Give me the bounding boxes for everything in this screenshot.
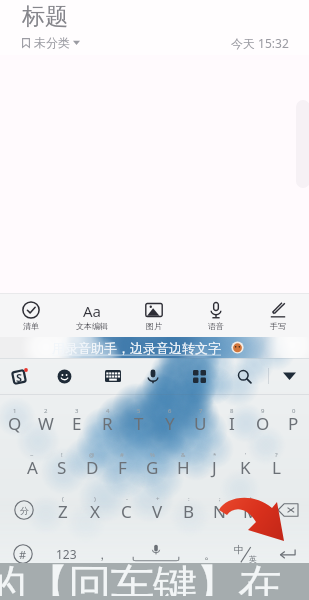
button[interactable]: ' bbox=[230, 445, 261, 487]
button[interactable]: 6 bbox=[154, 401, 185, 443]
button[interactable] bbox=[181, 358, 217, 394]
button[interactable]: - bbox=[111, 489, 142, 531]
staticText: Y bbox=[165, 412, 175, 435]
button[interactable]: 2 bbox=[30, 401, 61, 443]
button[interactable]: 8 bbox=[216, 401, 247, 443]
staticText: ? bbox=[275, 451, 278, 459]
staticText: % bbox=[150, 451, 155, 459]
staticText: T bbox=[134, 412, 144, 435]
staticText: - bbox=[126, 495, 128, 503]
staticText: 图片 bbox=[146, 321, 162, 331]
button[interactable]: ~ bbox=[17, 445, 47, 487]
button[interactable]: Symbols bbox=[0, 533, 45, 575]
staticText: X bbox=[90, 500, 100, 523]
button[interactable]: 手写 bbox=[247, 294, 309, 337]
staticText: W bbox=[38, 412, 54, 435]
staticText: I bbox=[229, 412, 235, 435]
button[interactable]: S bbox=[2, 358, 38, 394]
staticText: 文本编辑 bbox=[76, 321, 108, 331]
staticText: 分 bbox=[20, 505, 29, 516]
button[interactable] bbox=[95, 358, 131, 394]
button[interactable]: 4 bbox=[92, 401, 123, 443]
staticText: ; bbox=[219, 495, 221, 503]
button[interactable]: 清单 bbox=[0, 294, 61, 337]
staticText: P bbox=[288, 412, 299, 435]
staticText: O bbox=[256, 412, 270, 435]
button[interactable]: ; bbox=[204, 489, 235, 531]
staticText: 。 bbox=[204, 547, 216, 562]
button[interactable]: 语音 bbox=[185, 294, 247, 337]
staticText: N bbox=[213, 500, 226, 523]
button[interactable]: Delete bbox=[266, 489, 309, 531]
staticText: 7 bbox=[199, 407, 203, 415]
button[interactable]: 图片 bbox=[123, 294, 185, 337]
staticText: 的【回车键】在键 bbox=[0, 559, 292, 596]
staticText: ， bbox=[96, 547, 108, 562]
button[interactable]: Shift bbox=[0, 489, 47, 531]
staticText: ! bbox=[61, 451, 63, 459]
staticText: Aa bbox=[83, 301, 101, 319]
button[interactable]: & bbox=[168, 445, 199, 487]
button[interactable]: ( bbox=[47, 489, 79, 531]
button[interactable] bbox=[226, 358, 262, 394]
button[interactable]: Chinese English toggle bbox=[225, 533, 265, 575]
button[interactable]: / bbox=[235, 489, 266, 531]
staticText: @ bbox=[89, 451, 95, 459]
staticText: # bbox=[19, 547, 27, 562]
staticText: Z bbox=[58, 500, 68, 523]
staticText: 中 bbox=[234, 543, 244, 556]
button[interactable]: * bbox=[199, 445, 230, 487]
staticText: 1 bbox=[13, 407, 17, 415]
staticText: 123 bbox=[56, 546, 77, 562]
staticText: S bbox=[57, 456, 67, 479]
staticText: + bbox=[156, 495, 160, 503]
staticText: 8 bbox=[230, 407, 234, 415]
staticText: J bbox=[212, 456, 217, 479]
staticText: # bbox=[120, 451, 124, 459]
button[interactable] bbox=[135, 358, 171, 394]
button[interactable]: ) bbox=[79, 489, 111, 531]
button[interactable]: 5 bbox=[123, 401, 154, 443]
staticText: ~ bbox=[30, 451, 34, 459]
button[interactable]: Space bbox=[117, 533, 195, 575]
staticText: * bbox=[213, 451, 217, 459]
button[interactable]: Aa bbox=[61, 294, 123, 337]
button[interactable]: 用录音助手，边录音边转文字 bbox=[52, 337, 258, 358]
button[interactable]: # bbox=[107, 445, 137, 487]
button[interactable]: ? bbox=[261, 445, 292, 487]
staticText: G bbox=[146, 456, 159, 479]
button[interactable]: 123 bbox=[45, 533, 87, 575]
button[interactable] bbox=[46, 358, 82, 394]
button[interactable]: + bbox=[142, 489, 173, 531]
button[interactable]: 1 bbox=[0, 401, 30, 443]
button[interactable]: @ bbox=[77, 445, 107, 487]
staticText: : bbox=[188, 495, 190, 503]
staticText: ) bbox=[94, 495, 96, 503]
button[interactable] bbox=[271, 358, 307, 394]
button[interactable]: 3 bbox=[61, 401, 92, 443]
staticText: F bbox=[118, 456, 127, 479]
staticText: 3 bbox=[75, 407, 79, 415]
button[interactable]: ! bbox=[47, 445, 77, 487]
button[interactable]: % bbox=[137, 445, 168, 487]
staticText: H bbox=[177, 456, 190, 479]
staticText: L bbox=[272, 456, 281, 479]
staticText: Q bbox=[8, 412, 22, 435]
staticText: 用录音助手，边录音边转文字 bbox=[52, 340, 221, 356]
button[interactable]: 0 bbox=[278, 401, 309, 443]
staticText: A bbox=[27, 456, 38, 479]
button[interactable]: 7 bbox=[185, 401, 216, 443]
button[interactable]: ， bbox=[87, 533, 117, 575]
staticText: M bbox=[243, 500, 259, 523]
button[interactable]: 。 bbox=[195, 533, 225, 575]
staticText: 手写 bbox=[270, 321, 286, 331]
button[interactable]: 9 bbox=[247, 401, 278, 443]
staticText: R bbox=[102, 412, 113, 435]
button[interactable]: : bbox=[173, 489, 204, 531]
staticText: 6 bbox=[168, 407, 172, 415]
staticText: ( bbox=[62, 495, 64, 503]
button[interactable]: Enter bbox=[265, 533, 309, 575]
staticText: 2 bbox=[44, 407, 48, 415]
staticText: E bbox=[72, 412, 82, 435]
staticText: 9 bbox=[261, 407, 265, 415]
